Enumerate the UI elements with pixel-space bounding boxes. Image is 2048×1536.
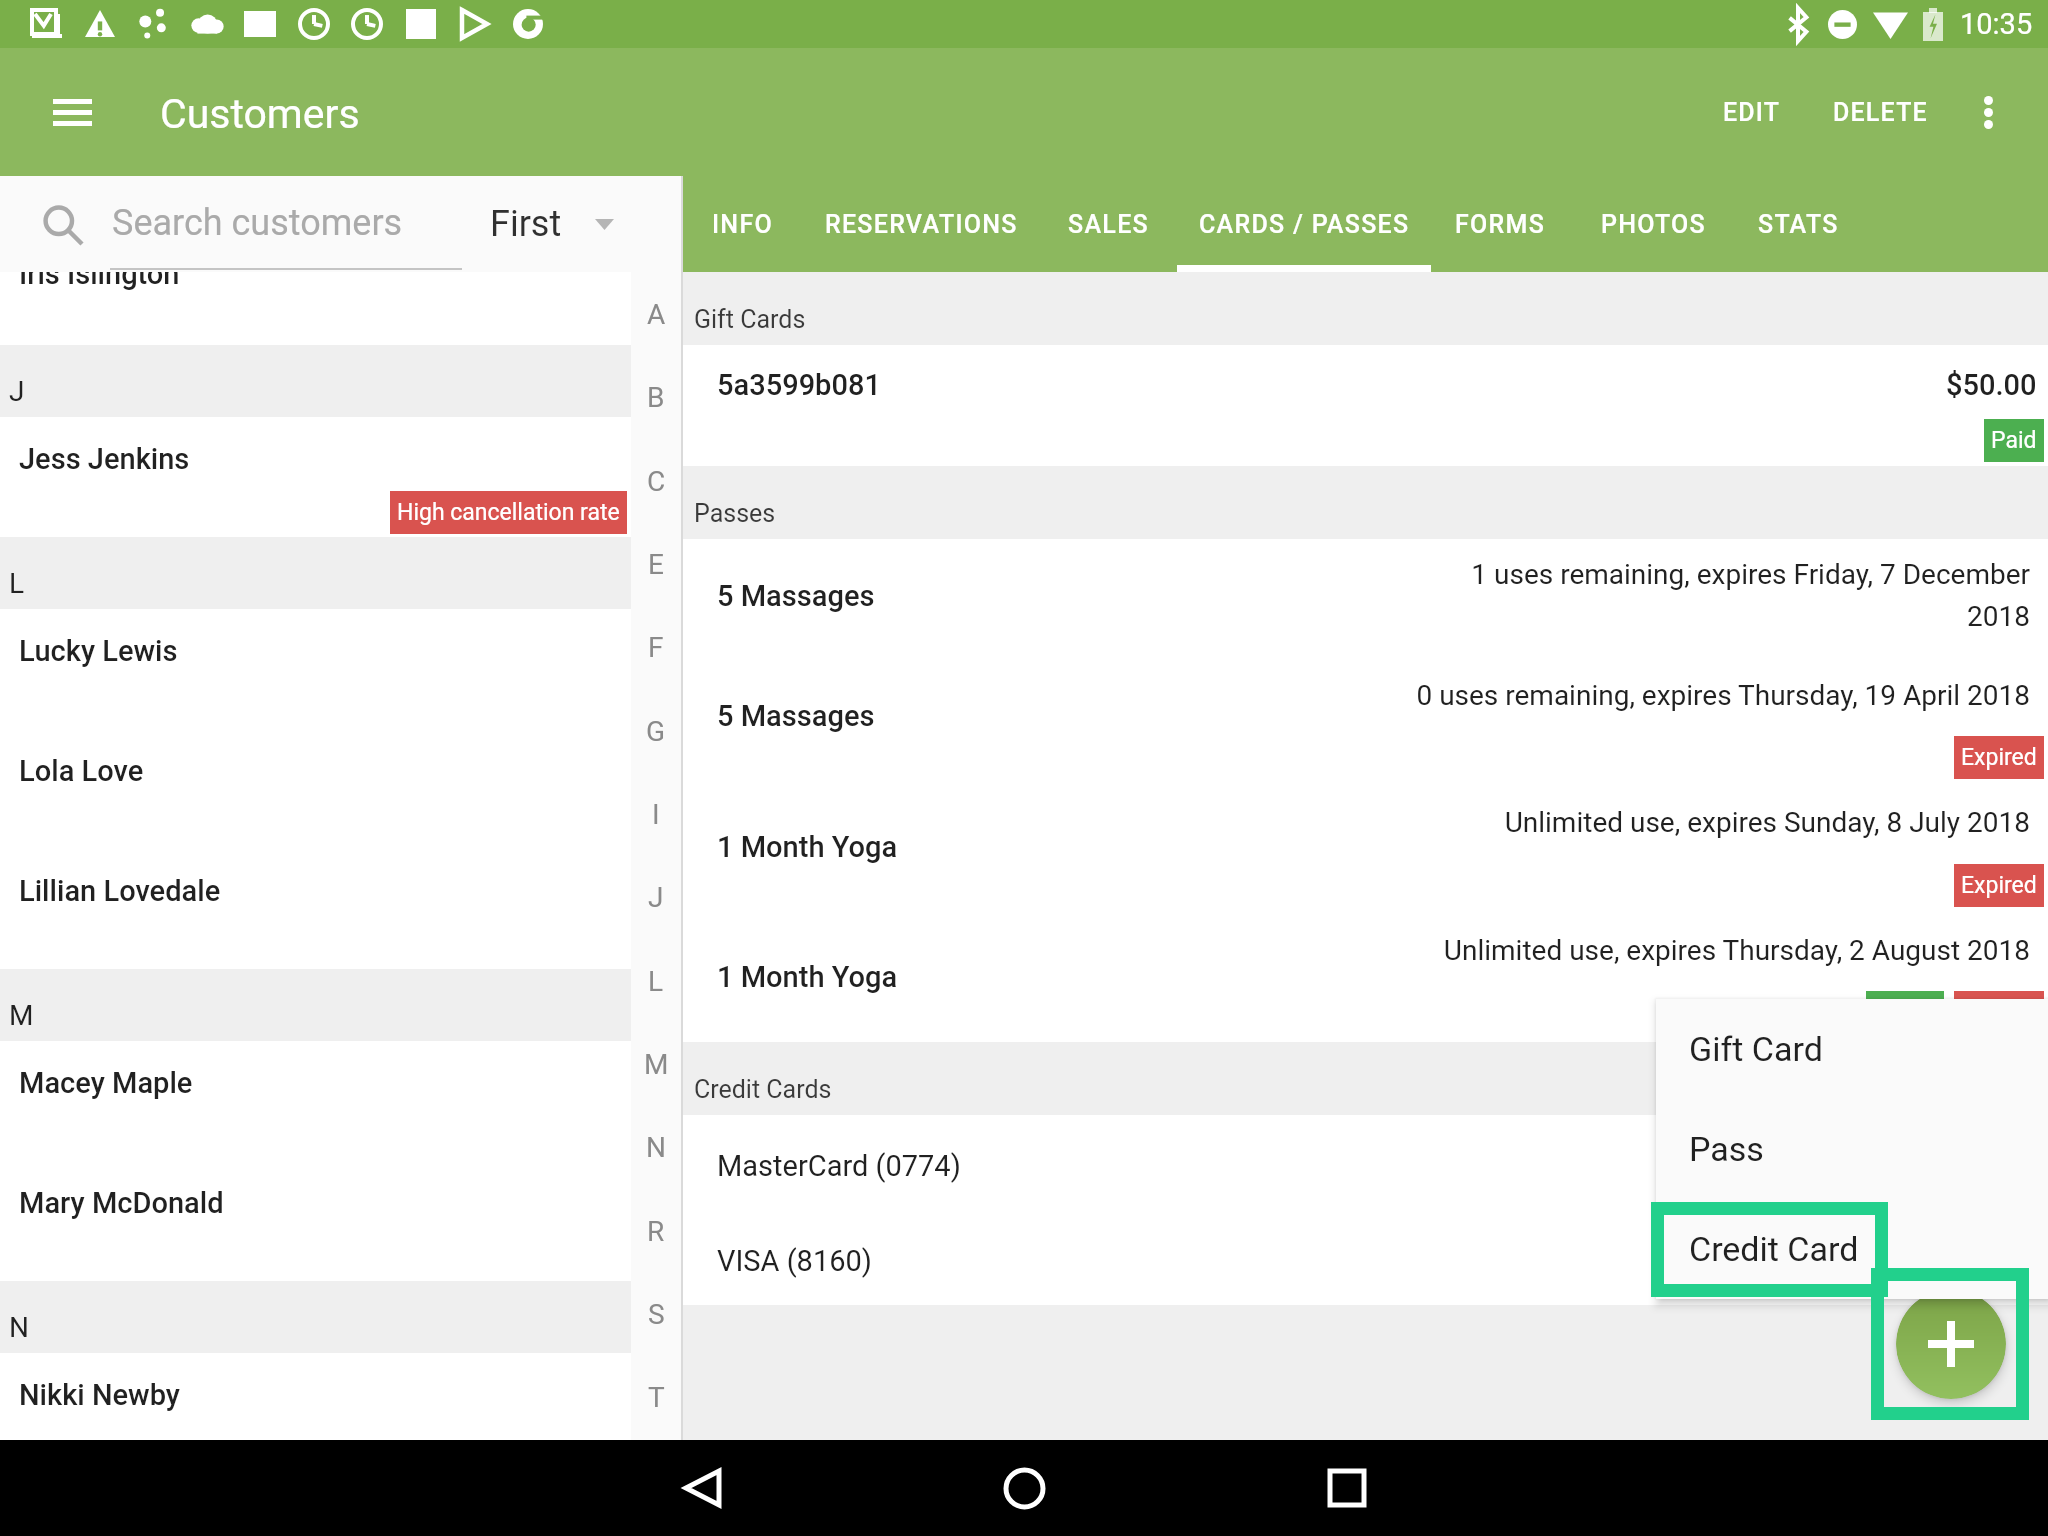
button[interactable]: DELETE bbox=[1818, 48, 1942, 176]
button[interactable]: J bbox=[631, 856, 681, 939]
staticText: Unlimited use, expires Thursday, 2 Augus… bbox=[1443, 934, 2030, 967]
button[interactable]: Pass bbox=[1656, 1099, 2048, 1199]
button[interactable]: EDIT bbox=[1690, 48, 1814, 176]
button[interactable]: E bbox=[631, 523, 681, 606]
button[interactable]: T bbox=[631, 1356, 681, 1439]
button[interactable]: RESERVATIONS bbox=[806, 176, 1036, 272]
staticText: EDIT bbox=[1723, 98, 1781, 127]
staticText: 1 Month Yoga bbox=[717, 960, 898, 994]
staticText: Credit Card bbox=[1689, 1229, 1859, 1269]
staticText: Credit Cards bbox=[694, 1075, 832, 1104]
staticText: R bbox=[647, 1215, 665, 1248]
staticText: L bbox=[648, 965, 664, 998]
staticText: Mary McDonald bbox=[19, 1186, 224, 1220]
staticText: I bbox=[652, 798, 660, 831]
button[interactable]: Nikki Newby bbox=[0, 1353, 631, 1440]
button[interactable]: Search bbox=[44, 206, 84, 246]
button[interactable]: 5 Massages bbox=[683, 539, 2048, 660]
button[interactable]: Lucky Lewis bbox=[0, 609, 631, 729]
button[interactable]: C bbox=[631, 439, 681, 523]
staticText: 5 Massages bbox=[717, 699, 875, 733]
button[interactable]: Lillian Lovedale bbox=[0, 849, 631, 969]
staticText: Macey Maple bbox=[19, 1066, 193, 1100]
staticText: Customers bbox=[160, 90, 360, 138]
staticText: First bbox=[490, 203, 562, 245]
staticText: Gift Cards bbox=[694, 305, 806, 334]
button[interactable]: Lola Love bbox=[0, 729, 631, 849]
button[interactable]: F bbox=[631, 606, 681, 689]
staticText: M bbox=[9, 999, 34, 1032]
staticText: Pass bbox=[1689, 1129, 1764, 1169]
staticText: A bbox=[647, 298, 666, 331]
button[interactable]: Recent apps bbox=[1315, 1440, 1379, 1536]
button[interactable]: A bbox=[631, 273, 681, 356]
button[interactable]: PHOTOS bbox=[1578, 176, 1728, 272]
button[interactable]: Gift Card bbox=[1656, 999, 2048, 1099]
staticText: PHOTOS bbox=[1601, 210, 1706, 239]
button[interactable]: Home bbox=[992, 1440, 1056, 1536]
button[interactable]: 5 Massages bbox=[683, 660, 2048, 787]
staticText: STATS bbox=[1758, 210, 1839, 239]
button[interactable]: Macey Maple bbox=[0, 1041, 631, 1161]
button[interactable]: 1 Month Yoga bbox=[683, 915, 2048, 1042]
button[interactable]: Mary McDonald bbox=[0, 1161, 631, 1281]
staticText: T bbox=[648, 1381, 665, 1414]
staticText: VISA (8160) bbox=[717, 1244, 872, 1278]
button[interactable]: G bbox=[631, 689, 681, 773]
button[interactable]: M bbox=[631, 1023, 681, 1106]
staticText: Expired bbox=[1961, 744, 2037, 771]
button[interactable]: S bbox=[631, 1273, 681, 1356]
button[interactable]: N bbox=[631, 1106, 681, 1189]
button[interactable]: More options bbox=[1952, 48, 2024, 176]
button[interactable]: Credit Card bbox=[1656, 1199, 2048, 1299]
staticText: 5a3599b081 bbox=[717, 368, 881, 402]
button[interactable]: MasterCard (0774) bbox=[683, 1115, 2048, 1210]
button[interactable]: CARDS / PASSES bbox=[1177, 176, 1431, 272]
staticText: INFO bbox=[712, 210, 774, 239]
button[interactable]: Iris Islington bbox=[0, 176, 631, 345]
staticText: CARDS / PASSES bbox=[1199, 210, 1410, 239]
staticText: Jess Jenkins bbox=[19, 442, 190, 476]
button[interactable]: L bbox=[0, 537, 631, 609]
staticText: 1 uses remaining, expires Friday, 7 Dece… bbox=[1471, 558, 2030, 633]
button[interactable]: STATS bbox=[1735, 176, 1862, 272]
staticText: J bbox=[648, 881, 664, 914]
button[interactable]: L bbox=[631, 939, 681, 1023]
staticText: Iris Islington bbox=[19, 257, 180, 291]
button[interactable]: VISA (8160) bbox=[683, 1210, 2048, 1305]
button[interactable]: Open navigation drawer bbox=[36, 48, 108, 176]
button[interactable]: N bbox=[0, 1281, 631, 1353]
staticText: Passes bbox=[694, 499, 776, 528]
button[interactable]: J bbox=[0, 345, 631, 417]
button[interactable]: 5a3599b081 bbox=[683, 345, 2048, 466]
staticText: Lillian Lovedale bbox=[19, 874, 221, 908]
staticText: $50.00 bbox=[1946, 368, 2037, 402]
staticText: Gift Card bbox=[1689, 1029, 1823, 1069]
staticText: L bbox=[9, 567, 25, 600]
staticText: Nikki Newby bbox=[19, 1378, 180, 1412]
button[interactable]: INFO bbox=[690, 176, 795, 272]
staticText: Unlimited use, expires Sunday, 8 July 20… bbox=[1504, 806, 2030, 839]
button[interactable]: 1 Month Yoga bbox=[683, 787, 2048, 915]
staticText: Lola Love bbox=[19, 754, 144, 788]
staticText: B bbox=[647, 381, 665, 414]
button[interactable]: I bbox=[631, 773, 681, 856]
staticText: 0 uses remaining, expires Thursday, 19 A… bbox=[1416, 679, 2030, 712]
staticText: 5 Massages bbox=[717, 579, 875, 613]
staticText: SALES bbox=[1068, 210, 1150, 239]
button[interactable]: B bbox=[631, 356, 681, 439]
button[interactable]: M bbox=[0, 969, 631, 1041]
staticText: F bbox=[648, 631, 664, 664]
button[interactable]: Add bbox=[1896, 1289, 2006, 1399]
button[interactable]: Back bbox=[670, 1440, 734, 1536]
button[interactable]: First bbox=[470, 176, 631, 272]
button[interactable]: FORMS bbox=[1433, 176, 1568, 272]
button[interactable]: SALES bbox=[1046, 176, 1172, 272]
staticText: G bbox=[646, 715, 666, 748]
button[interactable]: Jess Jenkins bbox=[0, 417, 631, 537]
button[interactable]: R bbox=[631, 1189, 681, 1273]
staticText: M bbox=[644, 1048, 669, 1081]
staticText: N bbox=[646, 1131, 666, 1164]
